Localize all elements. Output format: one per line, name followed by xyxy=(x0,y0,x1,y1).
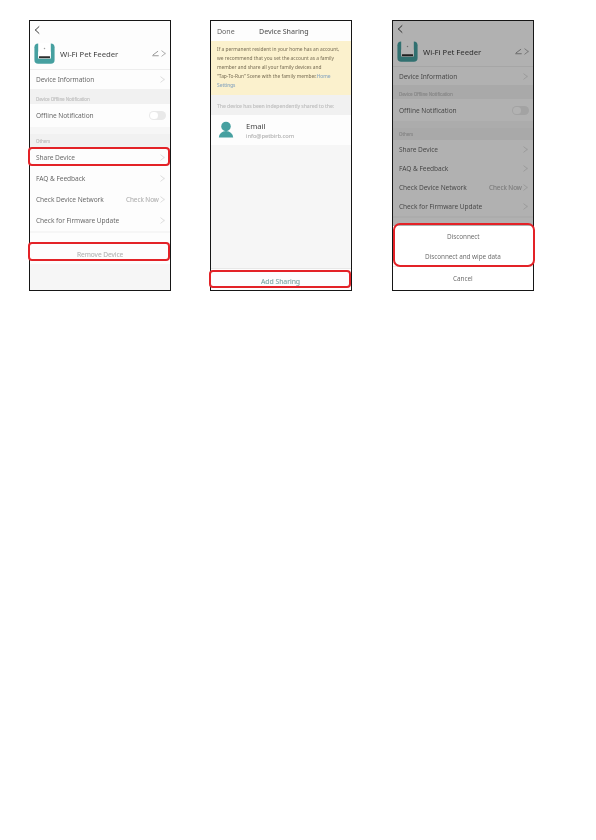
button[interactable]: Offline Notification xyxy=(393,99,533,121)
button[interactable]: FAQ & Feedback xyxy=(30,168,170,189)
staticText: Others xyxy=(399,131,414,137)
staticText: Wi-Fi Pet Feeder xyxy=(423,47,482,57)
button[interactable]: Share Device xyxy=(30,147,170,168)
staticText: Device Information xyxy=(399,72,458,81)
staticText: Remove Device xyxy=(77,250,124,259)
staticText: FAQ & Feedback xyxy=(399,164,449,173)
button[interactable]: Device Information xyxy=(30,70,170,89)
staticText: If a permanent resident in your home has… xyxy=(217,46,340,89)
staticText: Device Information xyxy=(36,75,95,84)
button[interactable]: Wi-Fi Pet Feeder xyxy=(30,38,170,69)
button[interactable]: Remove Device xyxy=(393,218,533,247)
staticText: Wi-Fi Pet Feeder xyxy=(60,49,119,59)
button[interactable]: Done xyxy=(216,25,236,37)
staticText: Remove Device xyxy=(440,234,487,243)
button[interactable]: Disconnect xyxy=(393,226,533,246)
button[interactable]: Check for Firmware Update xyxy=(30,210,170,231)
button[interactable]: Back xyxy=(32,24,44,36)
button[interactable]: Wi-Fi Pet Feeder xyxy=(393,37,533,66)
staticText: Device Offline Notification xyxy=(399,91,453,97)
staticText: Check for Firmware Update xyxy=(399,202,483,211)
button[interactable]: Disconnect and wipe data xyxy=(393,246,533,266)
staticText: Offline Notification xyxy=(36,111,94,120)
staticText: Check Device Network xyxy=(36,195,104,204)
staticText: Disconnect and wipe data xyxy=(425,252,501,261)
button[interactable]: Cancel xyxy=(393,267,533,290)
button[interactable]: Check Device Network xyxy=(393,178,533,197)
button[interactable]: Offline Notification xyxy=(30,104,170,127)
staticText: Share Device xyxy=(399,145,439,154)
staticText: Others xyxy=(36,138,51,144)
staticText: FAQ & Feedback xyxy=(36,174,86,183)
staticText: Device Offline Notification xyxy=(36,96,90,102)
button[interactable]: Share Device xyxy=(393,140,533,159)
staticText: Cancel xyxy=(453,274,473,283)
staticText: Check Now xyxy=(489,183,522,192)
staticText: Share Device xyxy=(36,153,76,162)
button[interactable]: Check for Firmware Update xyxy=(393,197,533,216)
button[interactable]: Back xyxy=(395,23,407,35)
button[interactable]: Add Sharing xyxy=(211,269,351,290)
staticText: info@petbirb.com xyxy=(246,132,295,140)
button[interactable]: FAQ & Feedback xyxy=(393,159,533,178)
staticText: Offline Notification xyxy=(399,106,457,115)
button[interactable]: Device Information xyxy=(393,67,533,85)
staticText: Check Device Network xyxy=(399,183,467,192)
staticText: Check for Firmware Update xyxy=(36,216,120,225)
staticText: Email xyxy=(246,121,266,131)
staticText: Device Sharing xyxy=(259,26,309,36)
staticText: Done xyxy=(217,26,235,36)
button[interactable]: Email xyxy=(211,115,351,145)
button[interactable]: Remove Device xyxy=(30,233,170,264)
staticText: Add Sharing xyxy=(261,277,301,286)
staticText: Disconnect xyxy=(447,232,480,241)
staticText: Check Now xyxy=(126,195,159,204)
staticText: The device has been independently shared… xyxy=(217,102,335,109)
button[interactable]: Check Device Network xyxy=(30,189,170,210)
